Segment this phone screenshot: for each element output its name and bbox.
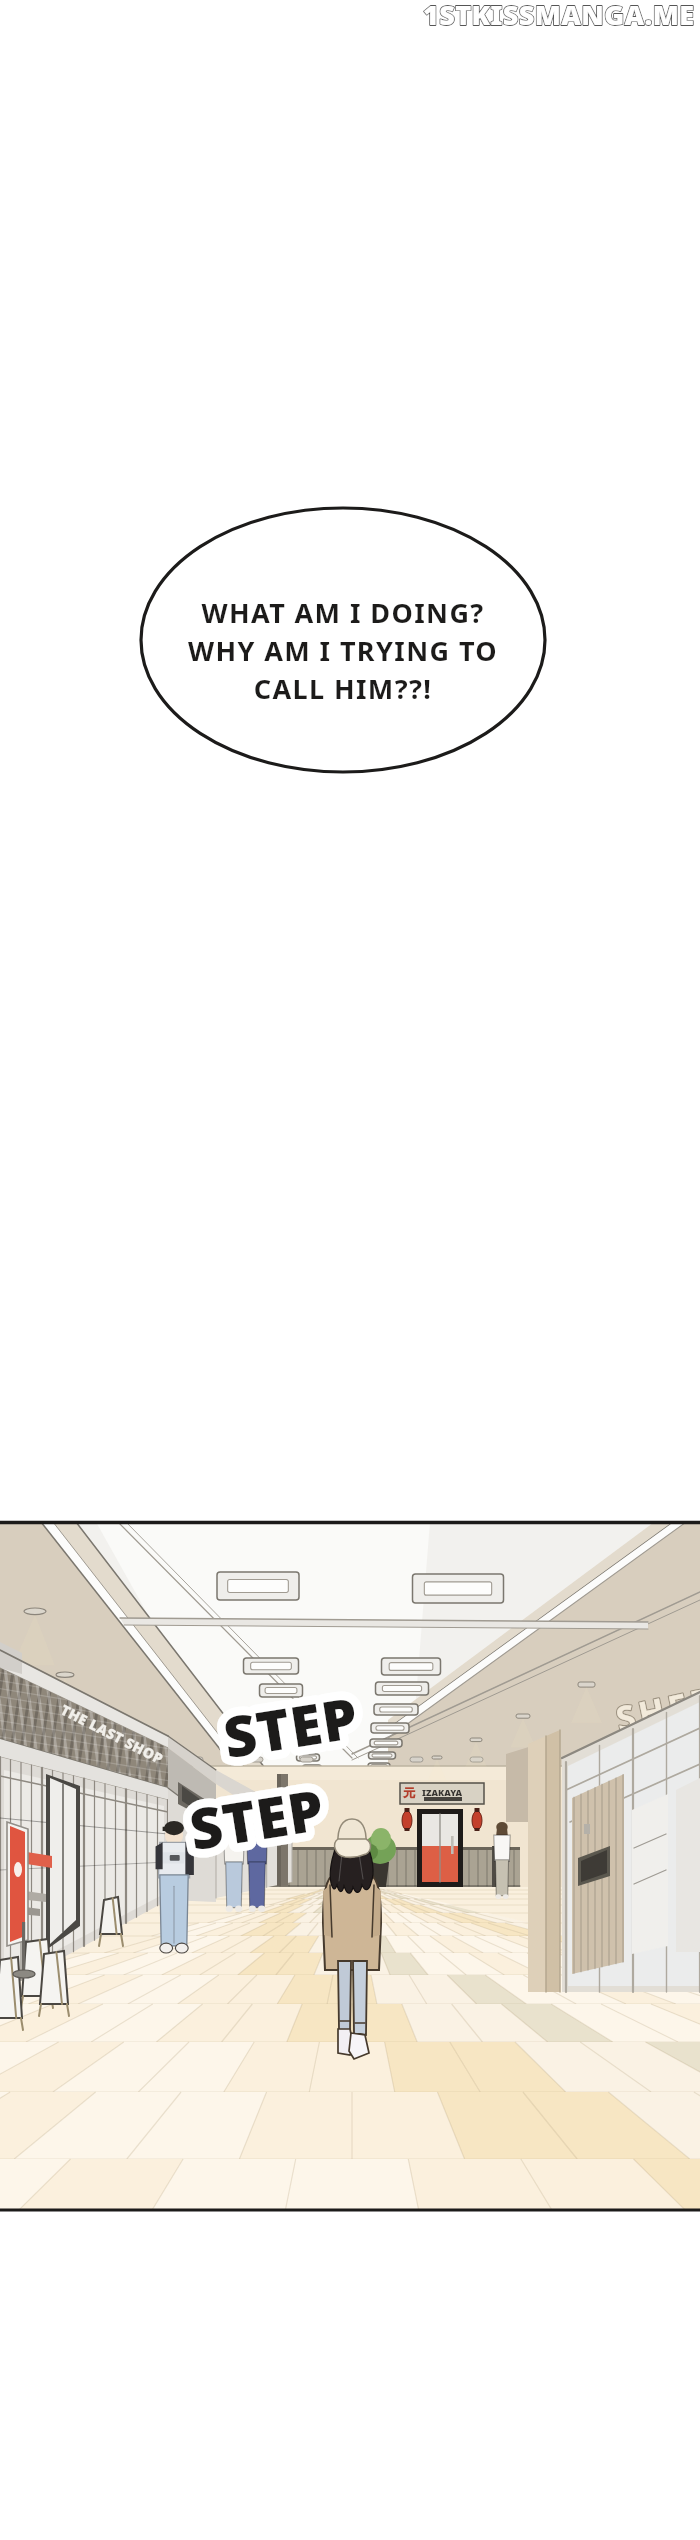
button[interactable] [0, 0, 700, 2540]
